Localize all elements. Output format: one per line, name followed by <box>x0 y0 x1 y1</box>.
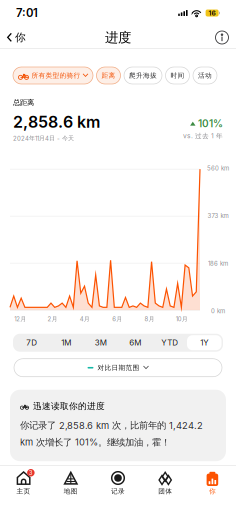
staticText: 地图 <box>64 487 78 495</box>
staticText: 时间 <box>170 71 184 80</box>
staticText: 主页 <box>17 487 31 495</box>
staticText: 12月 <box>14 315 26 323</box>
staticText: 爬升海拔 <box>129 71 157 80</box>
button[interactable]: 你 <box>0 26 32 48</box>
staticText: 6月 <box>112 315 122 323</box>
staticText: 4月 <box>80 315 90 323</box>
staticText: 团体 <box>158 487 172 495</box>
staticText: 373 km <box>207 212 228 219</box>
button[interactable]: 6M <box>118 335 152 350</box>
button[interactable]: 时间 <box>165 67 189 84</box>
button[interactable]: 3 <box>0 470 47 495</box>
staticText: 1M <box>61 338 71 348</box>
staticText: 101% <box>198 118 223 130</box>
staticText: 0 km <box>211 307 225 315</box>
button[interactable]: 对比日期范围 <box>14 359 222 377</box>
staticText: YTD <box>161 338 178 348</box>
staticText: 记录 <box>111 487 125 495</box>
staticText: 3M <box>95 338 107 348</box>
staticText: 8月 <box>144 315 154 323</box>
button[interactable]: 所有类型的骑行 <box>13 67 93 84</box>
staticText: 7:01 <box>16 6 38 20</box>
staticText: 186 km <box>208 260 228 267</box>
button[interactable]: YTD <box>152 335 187 350</box>
staticText: 你记录了 2,858.6 km 次，比前年的 1,424.2 km 次增长了 1… <box>20 420 203 448</box>
staticText: 所有类型的骑行 <box>31 71 80 80</box>
staticText: 6M <box>129 338 141 348</box>
staticText: 活动 <box>198 71 212 80</box>
staticText: 3 <box>29 469 33 476</box>
staticText: vs. 过去 1 年 <box>183 132 223 140</box>
staticText: 560 km <box>207 165 229 172</box>
button[interactable]: 3M <box>83 335 118 350</box>
staticText: 10月 <box>176 315 188 323</box>
button[interactable]: 团体 <box>142 470 189 495</box>
button[interactable]: 地图 <box>47 470 94 495</box>
staticText: 迅速读取你的进度 <box>33 401 105 412</box>
button[interactable]: 活动 <box>193 67 217 84</box>
button[interactable]: 记录 <box>94 470 142 495</box>
staticText: 7D <box>26 338 37 348</box>
button[interactable]: Info <box>208 26 236 48</box>
staticText: 16 <box>209 9 216 17</box>
button[interactable]: 1Y <box>187 335 221 350</box>
button[interactable]: 距离 <box>96 67 120 84</box>
staticText: 你 <box>209 487 216 495</box>
button[interactable]: 爬升海拔 <box>124 67 162 84</box>
staticText: 2,858.6 km <box>13 112 100 132</box>
button[interactable]: 你 <box>189 470 236 495</box>
staticText: 对比日期范围 <box>97 363 139 372</box>
button[interactable]: 7D <box>14 335 49 350</box>
staticText: 你 <box>15 31 26 44</box>
staticText: 进度 <box>105 29 131 46</box>
staticText: 2月 <box>47 315 57 323</box>
staticText: 总距离 <box>13 98 34 107</box>
staticText: 2024年11月4日 - 今天 <box>13 135 74 142</box>
staticText: 距离 <box>101 71 115 80</box>
staticText: 1Y <box>200 338 208 348</box>
button[interactable]: 1M <box>49 335 83 350</box>
